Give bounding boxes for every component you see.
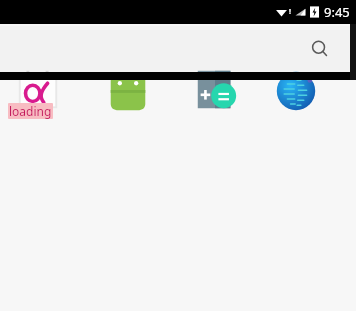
button[interactable]: Play Store <box>104 66 152 114</box>
button[interactable]: Calendar app <box>14 66 62 114</box>
staticText: ! <box>289 7 291 17</box>
button[interactable]: Search <box>308 37 332 61</box>
button[interactable]: Calculator <box>192 66 240 114</box>
button[interactable]: Browser <box>272 66 320 114</box>
staticText: loading <box>9 103 52 119</box>
button[interactable]: Search <box>0 26 356 72</box>
staticText: 9:45 <box>324 3 350 21</box>
